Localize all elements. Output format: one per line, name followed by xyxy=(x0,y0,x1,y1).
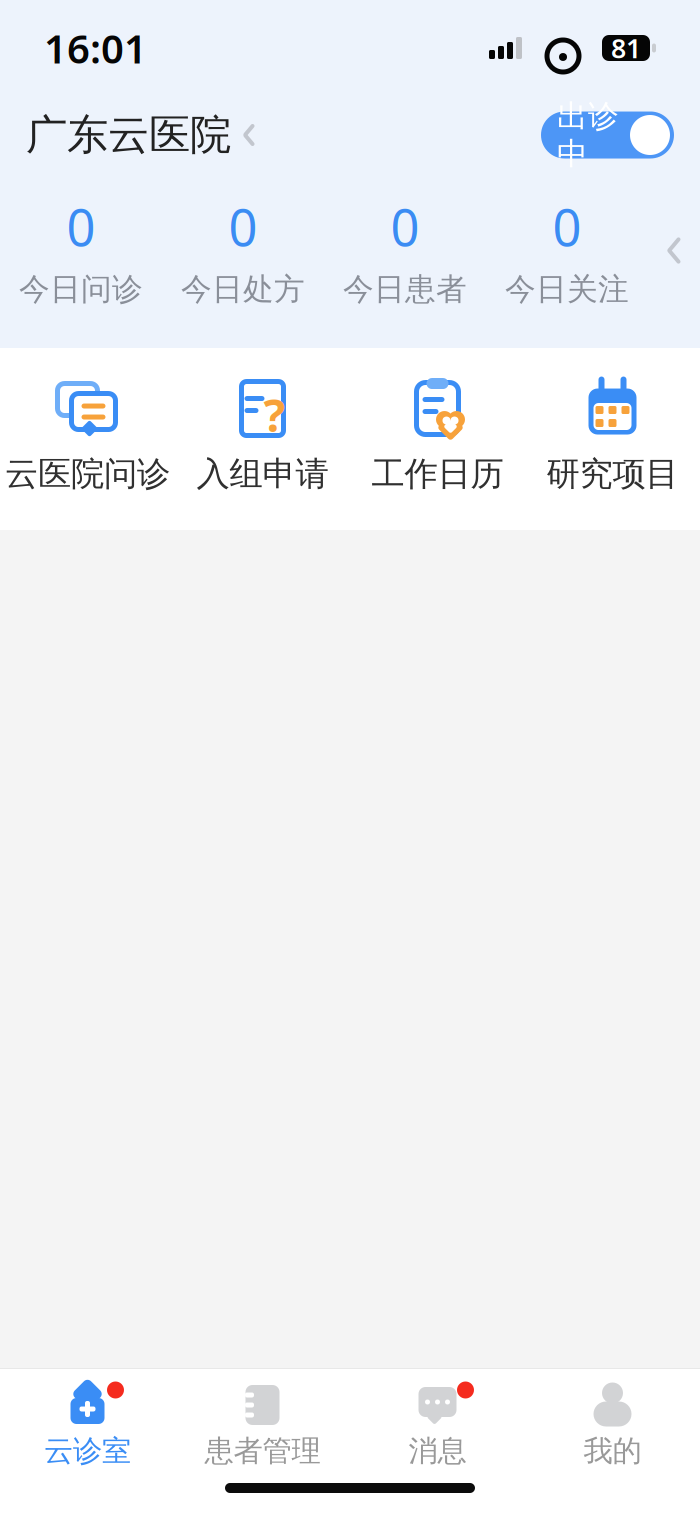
staticText: 云医院问诊 xyxy=(5,453,170,494)
button[interactable]: 研究项目 xyxy=(525,377,700,494)
button[interactable]: 0 xyxy=(162,193,324,308)
button[interactable]: 云诊室 xyxy=(0,1369,175,1469)
staticText: 工作日历 xyxy=(371,453,503,494)
staticText: 患者管理 xyxy=(204,1433,320,1469)
staticText: 0 xyxy=(66,193,95,260)
button[interactable]: 0 xyxy=(324,193,486,308)
staticText: 研究项目 xyxy=(546,453,678,494)
staticText: 消息 xyxy=(408,1433,466,1469)
button[interactable]: 工作日历 xyxy=(350,377,525,494)
staticText: 今日关注 xyxy=(505,270,629,308)
button[interactable]: 出诊中 xyxy=(541,111,674,158)
staticText: 0 xyxy=(228,193,257,260)
button[interactable]: 0 xyxy=(0,193,162,308)
staticText: 今日处方 xyxy=(181,270,305,308)
staticText: ? xyxy=(263,384,285,445)
button[interactable]: 0 xyxy=(486,193,648,308)
staticText: 今日问诊 xyxy=(19,270,143,308)
staticText: 广东云医院 xyxy=(26,110,231,160)
staticText: 今日患者 xyxy=(343,270,467,308)
staticText: 16:01 xyxy=(44,21,147,74)
button[interactable]: ? xyxy=(175,377,350,494)
staticText: 云诊室 xyxy=(44,1433,131,1469)
button[interactable]: 我的 xyxy=(525,1369,700,1469)
staticText: 81 xyxy=(611,30,641,66)
staticText: 0 xyxy=(390,193,419,260)
button[interactable]: 云医院问诊 xyxy=(0,377,175,494)
button[interactable]: 消息 xyxy=(350,1369,525,1469)
staticText: 0 xyxy=(552,193,581,260)
staticText: 我的 xyxy=(583,1433,641,1469)
button[interactable]: 患者管理 xyxy=(175,1369,350,1469)
staticText: 入组申请 xyxy=(196,453,328,494)
button[interactable]: 更多统计 xyxy=(648,237,700,264)
button[interactable]: 广东云医院 xyxy=(26,110,255,160)
staticText: 出诊中 xyxy=(557,97,619,173)
